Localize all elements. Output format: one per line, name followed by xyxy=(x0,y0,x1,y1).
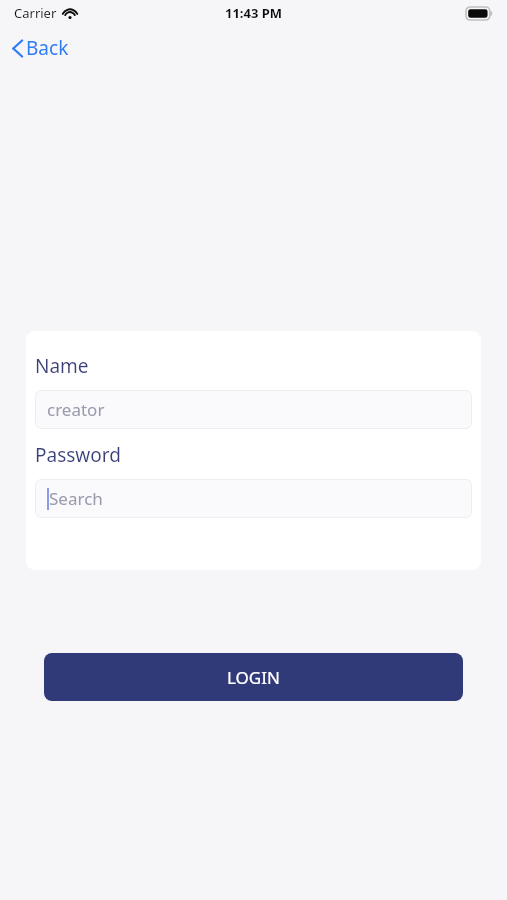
button[interactable]: Search xyxy=(35,479,472,518)
button[interactable]: LOGIN xyxy=(44,653,463,701)
staticText: Search xyxy=(49,487,103,510)
staticText: LOGIN xyxy=(227,666,280,689)
button[interactable]: creator xyxy=(35,390,472,429)
staticText: creator xyxy=(47,398,105,421)
other: Wi-Fi xyxy=(62,7,78,19)
staticText: Password xyxy=(35,442,121,468)
other: Battery xyxy=(466,7,493,20)
button[interactable]: Back xyxy=(0,31,79,65)
staticText: Back xyxy=(26,35,69,61)
staticText: Name xyxy=(35,353,89,379)
other: Back xyxy=(12,39,23,58)
staticText: Carrier xyxy=(14,4,57,22)
staticText: 11:43 PM xyxy=(225,4,283,22)
